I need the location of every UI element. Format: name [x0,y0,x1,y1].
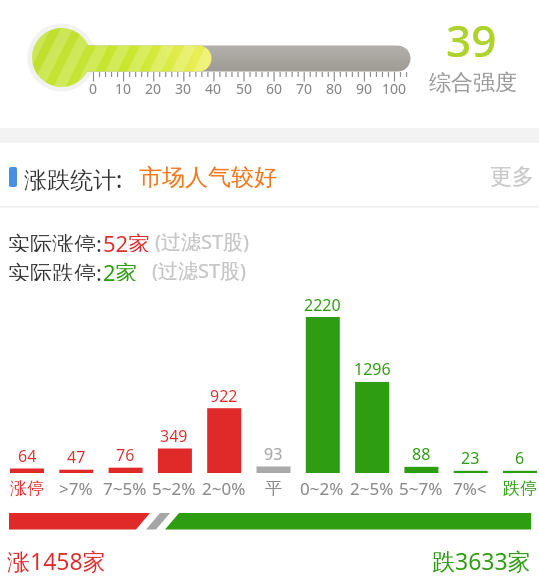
staticText: 88 [412,443,431,463]
staticText: 5~2% [152,477,196,499]
staticText: 市场人气较好 [139,163,277,191]
staticText: 涨跌统计: [24,163,123,191]
button[interactable]: 涨跌统计: [24,163,139,191]
staticText: 64 [18,445,37,465]
staticText: 39 [446,10,497,62]
staticText: 1296 [354,358,391,378]
staticText: 7%< [453,477,487,499]
staticText: 349 [160,425,188,445]
staticText: 0 [89,79,98,97]
staticText: 6 [515,447,525,467]
staticText: 0~2% [300,477,344,499]
staticText: 跌停 [503,478,537,499]
staticText: 2~0% [202,477,246,499]
staticText: 23 [461,447,480,467]
staticText: (过滤ST股) [155,228,250,252]
staticText: 40 [205,79,222,97]
staticText: 80 [326,79,343,97]
staticText: 7~5% [103,477,147,499]
staticText: 52家 [103,228,151,252]
staticText: 实际涨停: [8,228,102,252]
staticText: 76 [116,444,135,464]
staticText: 平 [265,478,282,499]
staticText: 2~5% [350,477,394,499]
staticText: 50 [236,79,253,97]
staticText: 100 [382,79,407,97]
staticText: 涨停 [10,478,44,499]
staticText: 70 [296,79,313,97]
staticText: 2家 [103,257,138,281]
staticText: 60 [266,79,283,97]
staticText: 实际跌停: [8,257,102,281]
staticText: >7% [59,477,93,499]
staticText: 更多 [490,163,534,191]
button[interactable]: 更多 [478,163,534,191]
staticText: 涨1458家 [7,545,106,575]
staticText: 跌3633家 [432,545,531,575]
staticText: 90 [356,79,373,97]
staticText: 10 [115,79,132,97]
staticText: 93 [264,443,283,463]
staticText: 30 [175,79,192,97]
staticText: 922 [210,385,238,405]
staticText: 20 [145,79,162,97]
staticText: 综合强度 [429,69,517,97]
staticText: 2220 [304,294,341,314]
staticText: (过滤ST股) [152,257,247,281]
staticText: 47 [67,446,86,466]
staticText: 5~7% [399,477,443,499]
